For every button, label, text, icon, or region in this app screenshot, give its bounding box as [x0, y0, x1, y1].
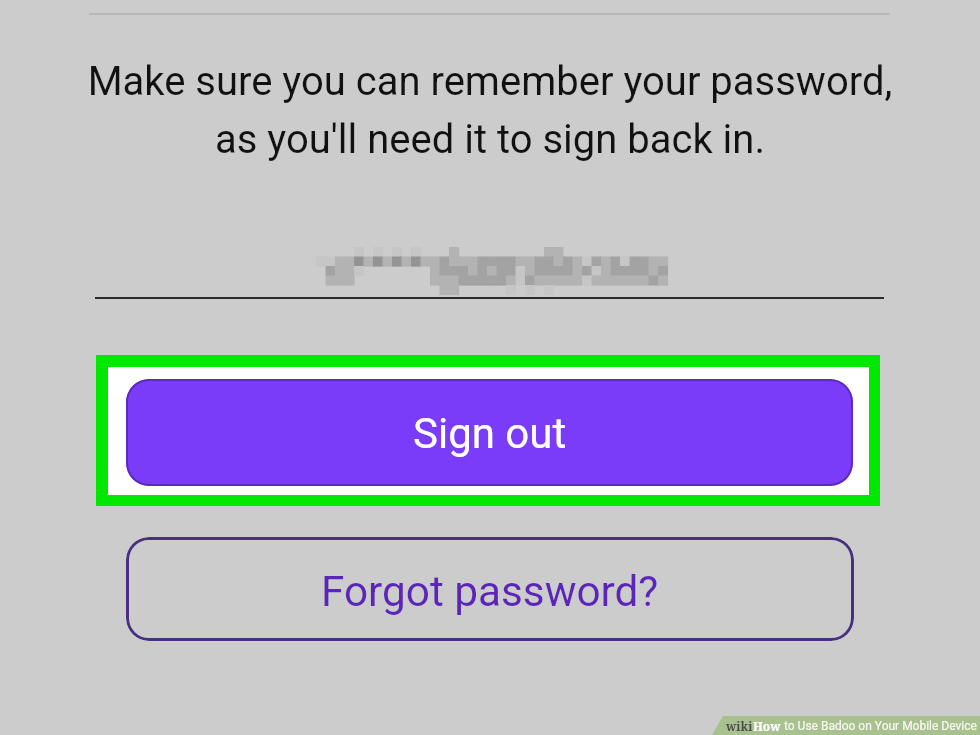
- staticText: Make sure you can remember your password…: [0, 58, 980, 163]
- staticText: wiki: [726, 718, 753, 734]
- staticText: How: [753, 718, 781, 734]
- staticText: Forgot password?: [321, 567, 659, 617]
- staticText: to Use Badoo on Your Mobile Device: [781, 719, 977, 733]
- staticText: Sign out: [413, 409, 567, 458]
- button[interactable]: Email address: [95, 240, 884, 299]
- button[interactable]: Forgot password?: [126, 537, 854, 641]
- button[interactable]: Sign out: [126, 379, 853, 486]
